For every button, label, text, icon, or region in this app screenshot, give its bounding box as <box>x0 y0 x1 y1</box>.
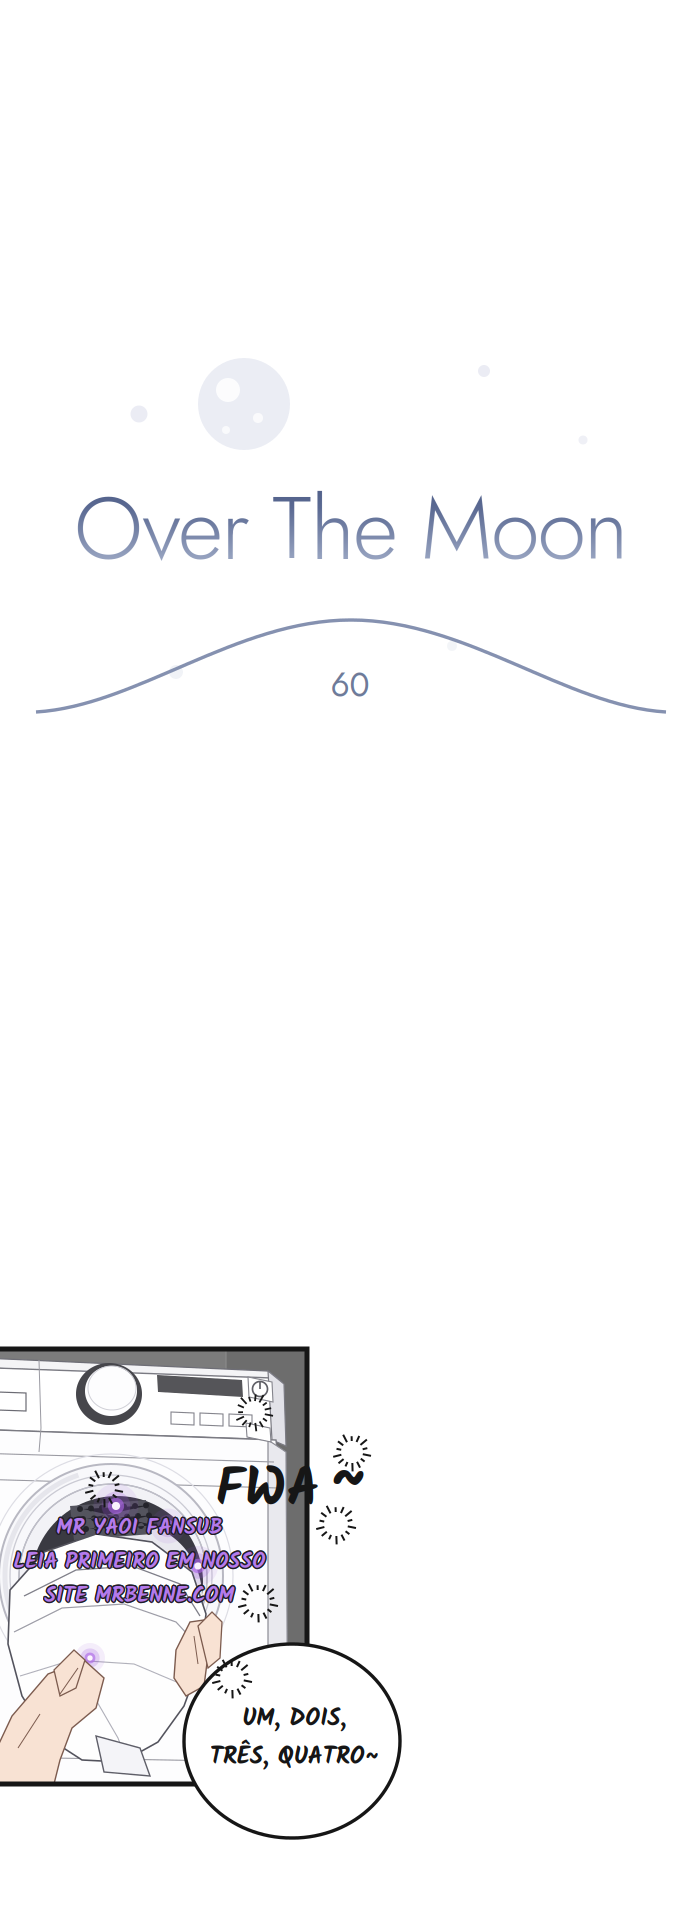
staticText: MR YAOI FANSUB LEIA PRIMEIRO EM NOSSO SI… <box>11 1511 263 1613</box>
staticText: FWA <box>215 1448 320 1533</box>
staticText: MR YAOI FANSUB LEIA PRIMEIRO EM NOSSO SI… <box>14 1510 266 1612</box>
staticText: MR YAOI FANSUB LEIA PRIMEIRO EM NOSSO SI… <box>14 1512 266 1614</box>
staticText: 60 <box>330 661 369 709</box>
staticText: MR YAOI FANSUB LEIA PRIMEIRO EM NOSSO SI… <box>13 1511 265 1613</box>
staticText: MR YAOI FANSUB LEIA PRIMEIRO EM NOSSO SI… <box>12 1512 264 1614</box>
staticText: MR YAOI FANSUB LEIA PRIMEIRO EM NOSSO SI… <box>13 1509 265 1611</box>
staticText: UM, DOIS, TRÊS, QUATRO~ <box>209 1700 378 1776</box>
staticText: MR YAOI FANSUB LEIA PRIMEIRO EM NOSSO SI… <box>13 1512 265 1614</box>
staticText: MR YAOI FANSUB LEIA PRIMEIRO EM NOSSO SI… <box>12 1510 264 1612</box>
staticText: ~ <box>329 1430 367 1532</box>
staticText: MR YAOI FANSUB LEIA PRIMEIRO EM NOSSO SI… <box>14 1511 266 1613</box>
